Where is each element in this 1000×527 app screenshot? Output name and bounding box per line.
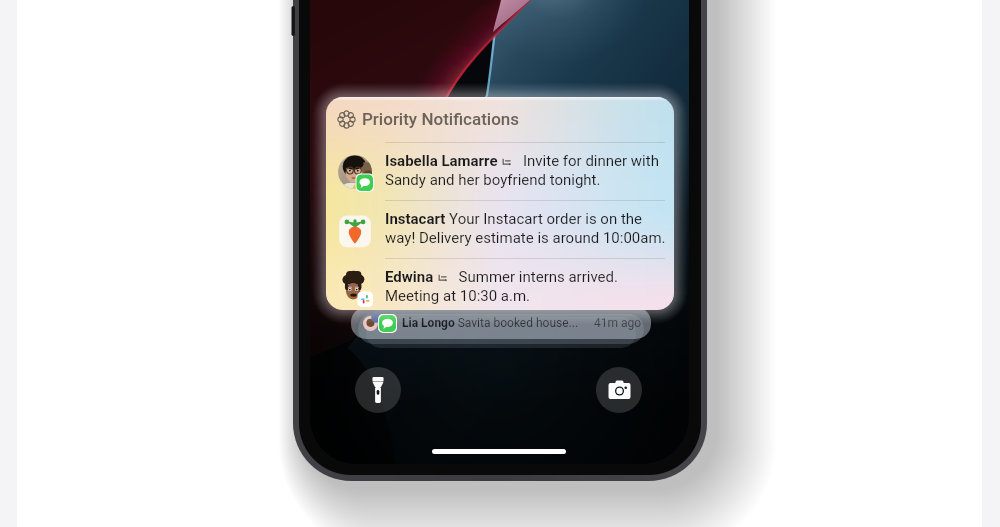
- button[interactable]: Instacart Your Instacart order is on the…: [326, 205, 674, 257]
- staticText: 41m ago: [594, 316, 642, 330]
- button[interactable]: Isabella Lamarre Invite for dinner with …: [326, 147, 674, 199]
- button[interactable]: Priority Notifications: [326, 97, 674, 310]
- button[interactable]: Camera: [596, 367, 642, 413]
- staticText: Isabella Lamarre Invite for dinner with …: [385, 152, 667, 188]
- button[interactable]: Lia Longo Savita booked house...: [351, 307, 651, 339]
- button[interactable]: Edwina Summer interns arrived. Meeting a…: [326, 263, 674, 310]
- staticText: Lia Longo Savita booked house...: [402, 316, 579, 330]
- staticText: Instacart Your Instacart order is on the…: [385, 210, 667, 246]
- staticText: Edwina Summer interns arrived. Meeting a…: [385, 268, 667, 304]
- button[interactable]: Flashlight: [355, 367, 401, 413]
- staticText: Priority Notifications: [362, 109, 520, 129]
